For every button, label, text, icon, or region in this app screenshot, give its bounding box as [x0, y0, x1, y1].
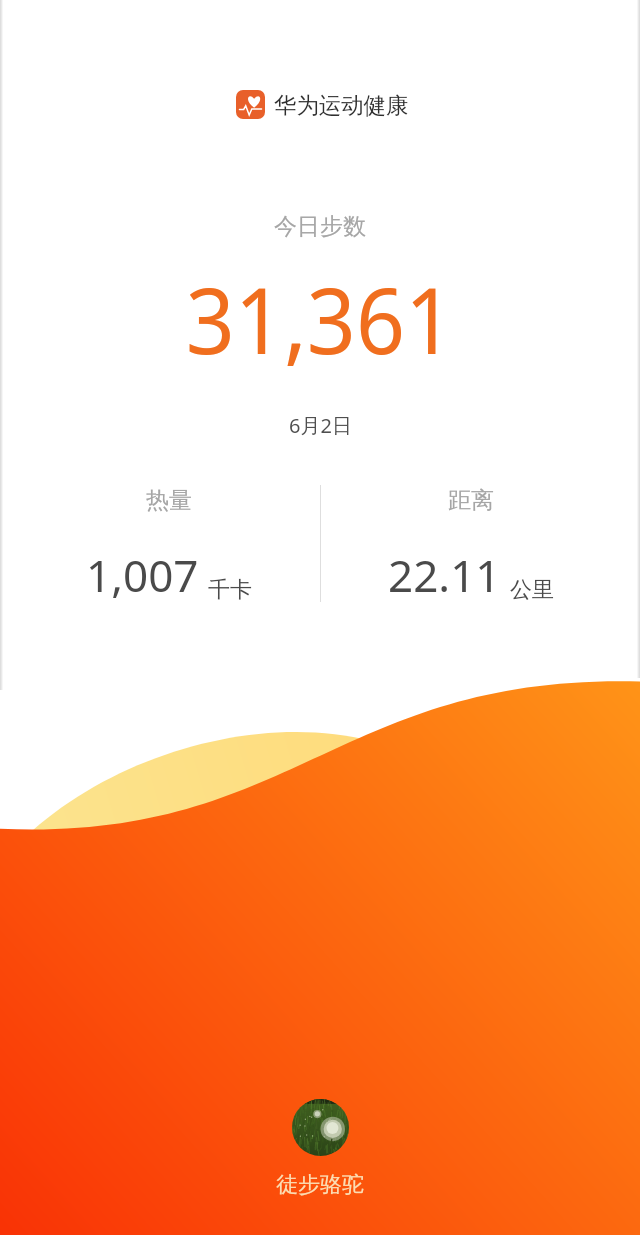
- staticText: 热量: [146, 486, 192, 515]
- button[interactable]: Huawei Health logo: [236, 90, 409, 119]
- button[interactable]: 热量: [9, 486, 329, 605]
- button[interactable]: User avatar: [276, 1099, 364, 1199]
- other: User avatar: [292, 1099, 349, 1156]
- staticText: 今日步数: [274, 212, 366, 241]
- other: Huawei Health logo: [236, 90, 265, 119]
- staticText: 22.11: [388, 545, 501, 605]
- staticText: 距离: [448, 486, 494, 515]
- staticText: 1,007: [86, 545, 199, 605]
- staticText: 公里: [510, 576, 554, 604]
- staticText: 31,361: [186, 256, 454, 381]
- staticText: 徒步骆驼: [276, 1171, 364, 1199]
- button[interactable]: 距离: [311, 486, 631, 605]
- staticText: 华为运动健康: [274, 91, 409, 119]
- staticText: 千卡: [208, 576, 252, 604]
- staticText: 6月2日: [289, 412, 352, 439]
